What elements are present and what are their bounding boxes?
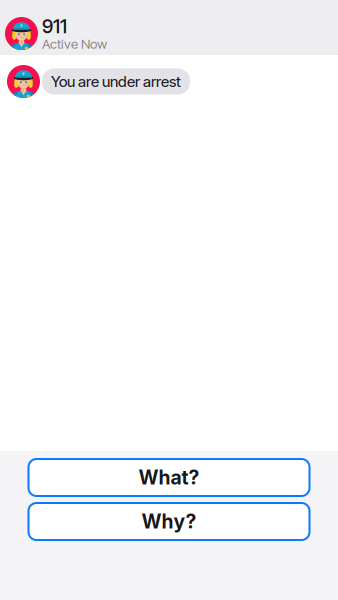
button[interactable]: What?	[28, 459, 309, 496]
staticText: Why?	[141, 510, 196, 533]
staticText: Active Now	[42, 36, 107, 52]
staticText: You are under arrest	[51, 72, 181, 91]
staticText: 911	[42, 15, 67, 38]
button[interactable]: Why?	[28, 503, 309, 540]
button[interactable]: 911	[0, 0, 338, 55]
staticText: What?	[138, 466, 199, 489]
